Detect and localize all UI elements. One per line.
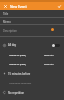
staticText: Description [3, 29, 17, 33]
button[interactable]: All day [0, 40, 64, 50]
staticText: 06:00 PM [44, 54, 54, 57]
staticText: August 29 (Wed) [9, 63, 26, 66]
button[interactable]: August 29 (Wed) [0, 59, 64, 69]
button[interactable]: Memo [0, 18, 64, 25]
button[interactable]: Add another notification [0, 79, 64, 87]
staticText: Memo [3, 20, 11, 24]
button[interactable]: Title [0, 10, 64, 18]
staticText: No repetition [8, 91, 25, 95]
button[interactable]: Save event [56, 2, 62, 10]
button[interactable]: Description [0, 25, 64, 37]
button[interactable]: August 29 (Wed) [0, 50, 64, 60]
staticText: 15 minutes before [8, 72, 31, 76]
button[interactable]: 15 minutes before [0, 69, 64, 78]
staticText: 07:00 PM [44, 63, 54, 66]
staticText: August 29 (Wed) [9, 54, 26, 57]
staticText: All day [8, 43, 17, 47]
button[interactable]: All day toggle [51, 43, 60, 48]
staticText: New Event [10, 4, 27, 8]
button[interactable]: Close [2, 2, 8, 10]
staticText: Add another notification [9, 82, 32, 85]
staticText: Title [3, 12, 9, 16]
button[interactable]: No repetition [0, 88, 64, 97]
